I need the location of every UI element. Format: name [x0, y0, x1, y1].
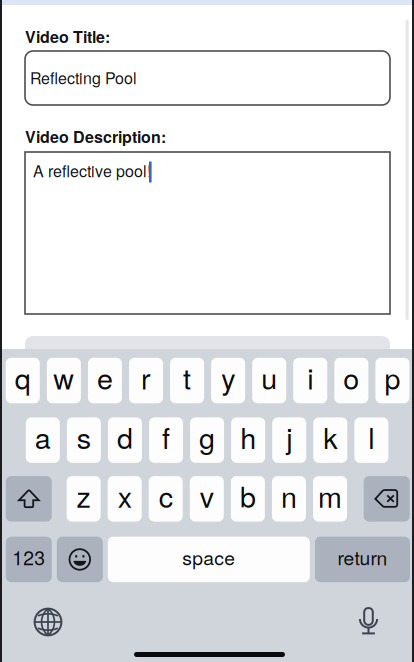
staticText: k: [323, 416, 337, 457]
button[interactable]: b: [231, 476, 265, 522]
button[interactable]: f: [149, 417, 183, 463]
button[interactable]: j: [272, 417, 306, 463]
button[interactable]: a: [26, 417, 60, 463]
staticText: n: [281, 475, 297, 516]
staticText: m: [318, 475, 342, 516]
staticText: return: [337, 543, 387, 571]
staticText: l: [368, 416, 374, 457]
staticText: space: [182, 543, 235, 571]
staticText: t: [183, 356, 191, 398]
staticText: d: [117, 416, 133, 457]
staticText: h: [240, 416, 256, 457]
staticText: Reflecting Pool: [30, 66, 137, 89]
button[interactable]: h: [231, 417, 265, 463]
button[interactable]: n: [272, 476, 306, 522]
staticText: i: [307, 356, 313, 398]
button[interactable]: m: [313, 476, 347, 522]
button[interactable]: Dictate: [357, 606, 380, 638]
staticText: w: [53, 356, 74, 398]
button[interactable]: Delete: [364, 476, 410, 522]
button[interactable]: Emoji: [57, 537, 103, 582]
staticText: e: [97, 356, 113, 398]
button[interactable]: c: [149, 476, 183, 522]
staticText: g: [199, 416, 215, 457]
staticText: o: [343, 356, 359, 398]
staticText: p: [384, 356, 400, 398]
button[interactable]: u: [252, 358, 286, 403]
staticText: v: [200, 475, 214, 516]
button[interactable]: g: [190, 417, 224, 463]
button[interactable]: w: [47, 358, 81, 403]
staticText: 123: [12, 543, 45, 571]
button[interactable]: l: [354, 417, 388, 463]
button[interactable]: return: [315, 537, 410, 582]
button[interactable]: x: [108, 476, 142, 522]
staticText: Video Description:: [25, 125, 166, 148]
button[interactable]: r: [129, 358, 163, 403]
button[interactable]: q: [6, 358, 40, 403]
button[interactable]: e: [88, 358, 122, 403]
button[interactable]: s: [67, 417, 101, 463]
staticText: q: [15, 356, 31, 398]
button[interactable]: o: [334, 358, 368, 403]
button[interactable]: 123: [6, 537, 52, 582]
button[interactable]: Shift: [6, 476, 52, 522]
button[interactable]: y: [211, 358, 245, 403]
button[interactable]: d: [108, 417, 142, 463]
button[interactable]: space: [108, 537, 310, 582]
staticText: b: [240, 475, 256, 516]
staticText: r: [141, 356, 151, 398]
button[interactable]: i: [293, 358, 327, 403]
button[interactable]: t: [170, 358, 204, 403]
button[interactable]: v: [190, 476, 224, 522]
staticText: Video Title:: [25, 25, 110, 48]
staticText: z: [77, 475, 91, 516]
staticText: a: [35, 416, 51, 457]
button[interactable]: z: [67, 476, 101, 522]
staticText: j: [286, 416, 292, 457]
staticText: A reflective pool!: [33, 159, 151, 182]
button[interactable]: k: [313, 417, 347, 463]
staticText: x: [118, 475, 132, 516]
staticText: u: [261, 356, 277, 398]
staticText: c: [159, 475, 173, 516]
staticText: f: [162, 416, 170, 457]
button[interactable]: Next keyboard: [33, 607, 62, 636]
staticText: y: [221, 356, 235, 398]
button[interactable]: p: [375, 358, 409, 403]
staticText: s: [77, 416, 91, 457]
